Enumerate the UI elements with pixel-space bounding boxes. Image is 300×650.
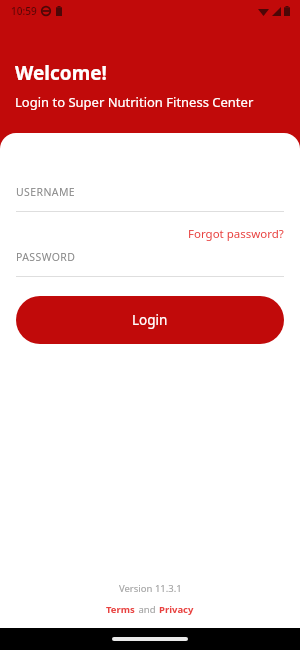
button[interactable]: Privacy <box>158 603 195 616</box>
staticText: and <box>136 603 158 616</box>
staticText: Forgot password? <box>188 226 284 242</box>
button[interactable]: PASSWORD <box>0 250 300 277</box>
staticText: Login <box>132 311 168 329</box>
other: Home gesture bar <box>0 628 300 650</box>
staticText: Privacy <box>159 603 194 616</box>
button[interactable]: Terms <box>105 603 136 616</box>
button[interactable]: USERNAME <box>0 185 300 212</box>
button[interactable]: Login <box>16 296 284 344</box>
staticText: 10:59 <box>11 4 37 18</box>
staticText: Welcome! <box>15 60 107 86</box>
button[interactable]: Forgot password? <box>172 224 300 244</box>
staticText: Terms <box>106 603 135 616</box>
staticText: Version 11.3.1 <box>119 582 182 595</box>
staticText: Login to Super Nutrition Fitness Center <box>15 93 254 111</box>
staticText: USERNAME <box>16 185 76 199</box>
staticText: PASSWORD <box>16 250 76 264</box>
